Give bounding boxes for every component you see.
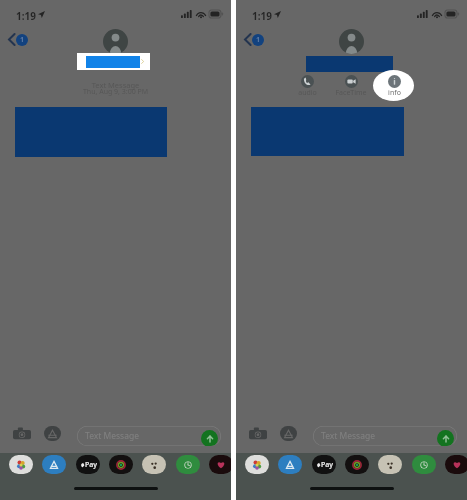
staticText: Pay — [85, 460, 97, 470]
staticText: 1 — [256, 35, 261, 45]
button[interactable]: Back — [244, 33, 263, 46]
staticText: 1 — [20, 35, 25, 45]
button[interactable]: App 2 — [278, 455, 302, 474]
button[interactable]: App 1 — [245, 455, 269, 474]
button[interactable]: App Store — [44, 426, 61, 441]
button[interactable] — [373, 70, 414, 101]
button[interactable]: Text Message — [313, 426, 457, 446]
button[interactable]: App 2 — [42, 455, 66, 474]
button[interactable]: FaceTime — [331, 75, 371, 98]
button[interactable]: Camera — [13, 426, 31, 441]
staticText: Pay — [321, 460, 333, 470]
button[interactable]: App 4 — [345, 455, 369, 474]
button[interactable]: App 6 — [176, 455, 200, 474]
button[interactable]: App 7 — [445, 455, 467, 474]
button[interactable]: Back — [8, 33, 27, 46]
button[interactable]: App 5 — [378, 455, 402, 474]
button[interactable]: App 4 — [109, 455, 133, 474]
button[interactable]: Send — [437, 430, 454, 446]
staticText: 1:19 — [16, 9, 36, 23]
button[interactable]: Send — [201, 430, 218, 446]
button[interactable] — [77, 53, 150, 70]
button[interactable]: App 1 — [9, 455, 33, 474]
staticText: FaceTime — [335, 88, 367, 98]
staticText: info — [388, 88, 401, 98]
button[interactable]: audio — [287, 75, 327, 98]
staticText: Text Message — [321, 430, 375, 442]
staticText: audio — [298, 88, 317, 98]
staticText: Text Message — [85, 430, 139, 442]
button[interactable]: App 3 — [312, 455, 336, 474]
button[interactable]: Camera — [249, 426, 267, 441]
button[interactable]: info — [374, 75, 414, 98]
staticText: 1:19 — [252, 9, 272, 23]
button[interactable]: App 3 — [76, 455, 100, 474]
button[interactable]: App 5 — [142, 455, 166, 474]
button[interactable]: App Store — [280, 426, 297, 441]
button[interactable]: App 6 — [412, 455, 436, 474]
button[interactable]: Text Message — [77, 426, 221, 446]
button[interactable]: App 7 — [209, 455, 233, 474]
